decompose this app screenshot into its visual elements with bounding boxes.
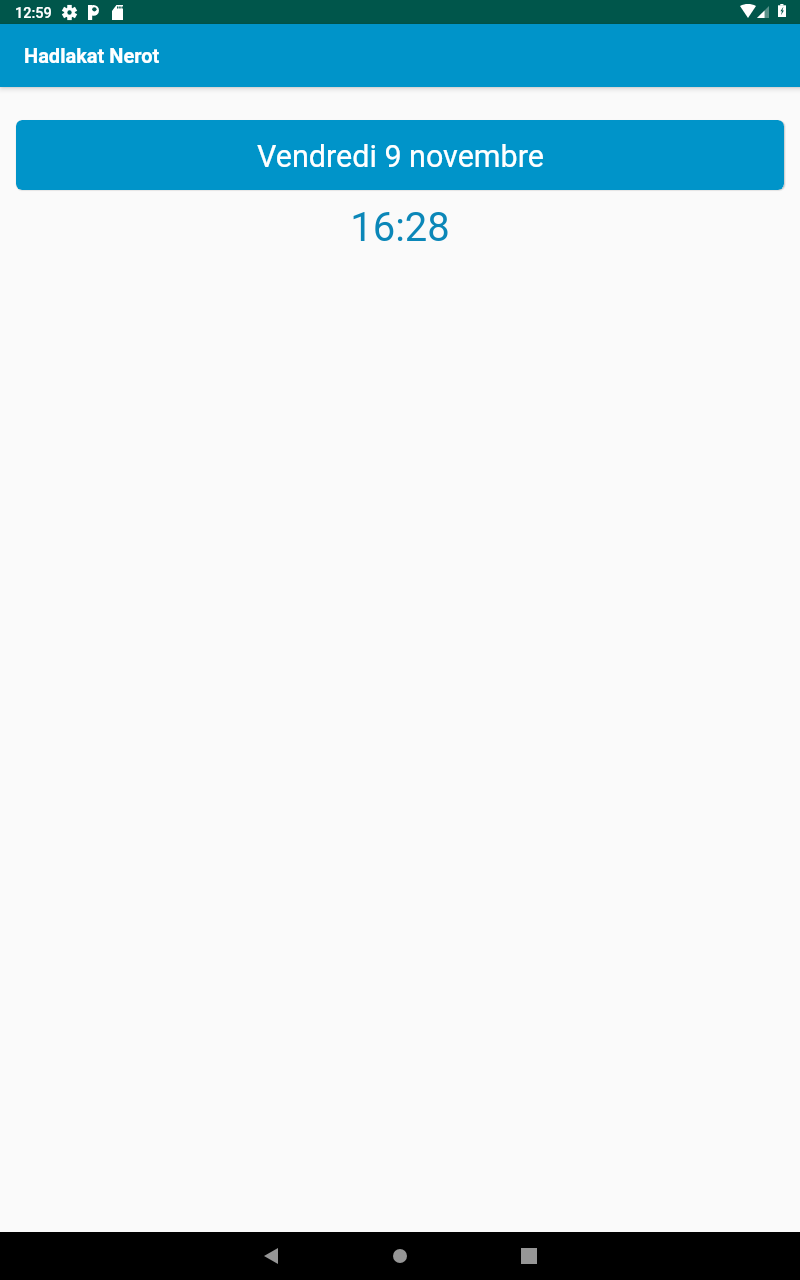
button[interactable]: Vendredi 9 novembre — [16, 120, 784, 190]
button[interactable]: Back — [247, 1232, 295, 1280]
staticText: 12:59 — [15, 5, 52, 22]
button[interactable]: Home — [376, 1232, 424, 1280]
staticText: 16:28 — [350, 204, 450, 251]
staticText: Hadlakat Nerot — [24, 44, 160, 67]
button[interactable]: Recent apps — [505, 1232, 553, 1280]
staticText: Vendredi 9 novembre — [257, 139, 544, 175]
